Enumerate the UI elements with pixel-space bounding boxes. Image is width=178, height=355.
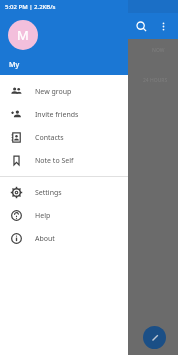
button[interactable]: About [0, 227, 128, 250]
button[interactable]: New group [0, 80, 128, 103]
staticText: My [9, 60, 20, 70]
button[interactable]: Help [0, 204, 128, 227]
staticText: Settings [35, 188, 62, 198]
staticText: Invite friends [35, 110, 79, 120]
staticText: Help [35, 211, 51, 221]
button[interactable]: Contacts [0, 126, 128, 149]
staticText: NOW [152, 47, 165, 54]
staticText: 24 HOURS [143, 77, 168, 84]
button[interactable]: Invite friends [0, 103, 128, 126]
staticText: M [17, 26, 29, 44]
button[interactable]: Search [130, 15, 152, 37]
staticText: About [35, 234, 55, 244]
button[interactable]: Compose message [143, 326, 166, 349]
staticText: 5:02 PM | 2.2KB/s [5, 3, 56, 11]
staticText: Contacts [35, 133, 64, 143]
button[interactable]: More options [152, 15, 174, 37]
staticText: New group [35, 87, 72, 97]
button[interactable]: Settings [0, 181, 128, 204]
button[interactable]: M [8, 20, 38, 50]
button[interactable]: Note to Self [0, 149, 128, 172]
staticText: Note to Self [35, 156, 74, 166]
